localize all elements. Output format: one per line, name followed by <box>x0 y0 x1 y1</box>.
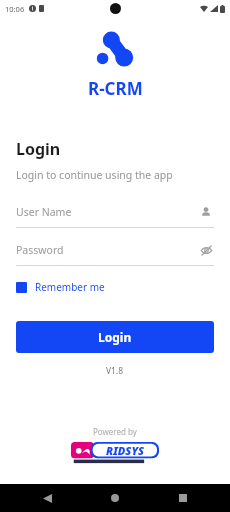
staticText: Login <box>16 138 61 160</box>
staticText: Login <box>98 329 132 345</box>
button[interactable]: Home <box>104 487 126 509</box>
button[interactable]: Remember me <box>16 280 105 294</box>
other: Show password <box>198 242 214 258</box>
staticText: User Name <box>16 205 198 219</box>
staticText: R-CRM <box>88 77 143 100</box>
staticText: Login to continue using the app <box>16 168 173 182</box>
staticText: 10:06 <box>5 4 25 14</box>
other: User name <box>198 204 214 220</box>
staticText: V1.8 <box>106 365 124 377</box>
staticText: Powered by <box>93 426 137 437</box>
staticText: Password <box>16 243 198 257</box>
button[interactable]: Recent apps <box>172 487 194 509</box>
staticText: Remember me <box>35 280 105 294</box>
staticText: RIDSYS <box>106 443 145 458</box>
button[interactable]: User Name <box>16 204 214 228</box>
button[interactable]: Password <box>16 242 214 266</box>
button[interactable]: Login <box>16 321 214 353</box>
button[interactable]: Back <box>36 487 58 509</box>
